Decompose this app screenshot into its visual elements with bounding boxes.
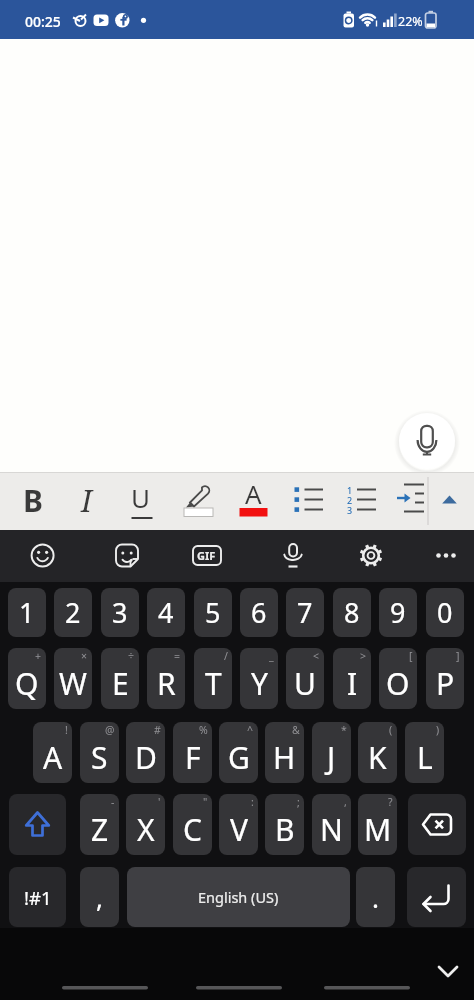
button[interactable]: 9 <box>379 588 417 637</box>
button[interactable]: 0 <box>426 588 464 637</box>
button[interactable] <box>185 534 229 578</box>
button[interactable]: O <box>379 648 417 709</box>
button[interactable]: 5 <box>194 588 232 637</box>
button[interactable]: C <box>173 794 212 855</box>
staticText: ( <box>389 723 393 737</box>
button[interactable]: 8 <box>333 588 371 637</box>
button[interactable]: R <box>147 648 185 709</box>
staticText: , <box>96 880 103 915</box>
button[interactable]: A <box>33 722 72 783</box>
staticText: 5 <box>205 594 221 631</box>
staticText: = <box>174 649 181 663</box>
staticText: A <box>245 476 262 511</box>
staticText: 22% <box>398 13 423 30</box>
staticText: 4 <box>158 594 174 631</box>
button[interactable] <box>434 478 472 524</box>
button[interactable]: K <box>358 722 397 783</box>
button[interactable]: G <box>219 722 258 783</box>
button[interactable] <box>424 534 468 578</box>
button[interactable] <box>324 974 410 1000</box>
button[interactable]: U <box>115 470 167 524</box>
button[interactable]: H <box>265 722 304 783</box>
button[interactable]: S <box>80 722 119 783</box>
button[interactable] <box>408 794 466 855</box>
staticText: [ <box>409 649 413 663</box>
staticText: V <box>230 809 248 850</box>
staticText: 3 <box>347 504 353 516</box>
staticText: ! <box>65 723 68 737</box>
button[interactable]: I <box>333 648 371 709</box>
staticText: B <box>23 480 43 521</box>
staticText: Z <box>91 809 109 850</box>
button[interactable]: Q <box>8 648 46 709</box>
button[interactable]: B <box>7 473 59 527</box>
button[interactable]: N <box>312 794 351 855</box>
button[interactable]: B <box>265 794 304 855</box>
button[interactable]: F <box>173 722 212 783</box>
button[interactable]: Z <box>80 794 119 855</box>
staticText: O <box>386 663 410 704</box>
button[interactable]: E <box>101 648 139 709</box>
staticText: # <box>154 723 161 737</box>
staticText: G <box>228 737 250 778</box>
button[interactable]: , <box>80 867 119 927</box>
button[interactable] <box>283 472 335 526</box>
staticText: " <box>203 795 208 809</box>
button[interactable] <box>196 974 282 1000</box>
button[interactable] <box>337 472 389 526</box>
button[interactable] <box>172 470 224 524</box>
button[interactable]: U <box>286 648 324 709</box>
staticText: ' <box>158 795 161 809</box>
staticText: + <box>35 649 42 663</box>
staticText: < <box>313 649 320 663</box>
staticText: @ <box>105 723 115 737</box>
staticText: 2 <box>347 494 353 506</box>
button[interactable]: . <box>356 867 395 927</box>
button[interactable]: X <box>126 794 165 855</box>
staticText: × <box>81 649 88 663</box>
staticText: 7 <box>297 594 313 631</box>
staticText: 1 <box>19 594 35 631</box>
button[interactable]: 7 <box>286 588 324 637</box>
button[interactable]: T <box>194 648 232 709</box>
button[interactable] <box>9 794 66 855</box>
button[interactable] <box>407 867 466 927</box>
button[interactable]: M <box>358 794 397 855</box>
button[interactable] <box>349 534 393 578</box>
button[interactable]: Y <box>240 648 278 709</box>
staticText: : <box>251 795 254 809</box>
staticText: H <box>273 737 296 778</box>
button[interactable] <box>388 472 440 526</box>
button[interactable]: I <box>61 473 113 527</box>
staticText: 00:25 <box>25 12 61 31</box>
button[interactable]: 4 <box>147 588 185 637</box>
button[interactable]: V <box>219 794 258 855</box>
button[interactable] <box>432 958 464 986</box>
button[interactable]: 1 <box>8 588 46 637</box>
staticText: ] <box>456 649 460 663</box>
button[interactable]: W <box>54 648 92 709</box>
staticText: Q <box>15 663 39 704</box>
staticText: N <box>320 809 343 850</box>
button[interactable]: 3 <box>101 588 139 637</box>
button[interactable]: !#1 <box>9 867 66 927</box>
button[interactable] <box>105 534 149 578</box>
staticText: % <box>199 723 208 737</box>
button[interactable]: A <box>227 471 279 525</box>
button[interactable]: J <box>312 722 351 783</box>
button[interactable]: P <box>426 648 464 709</box>
staticText: GIF <box>197 548 216 563</box>
button[interactable]: 6 <box>240 588 278 637</box>
button[interactable] <box>399 413 455 469</box>
staticText: P <box>436 663 455 704</box>
staticText: B <box>275 809 295 850</box>
button[interactable]: 2 <box>54 588 92 637</box>
button[interactable] <box>269 534 313 578</box>
button[interactable]: D <box>126 722 165 783</box>
staticText: _ <box>269 649 274 663</box>
button[interactable] <box>62 974 148 1000</box>
button[interactable] <box>21 534 65 578</box>
button[interactable]: L <box>405 722 444 783</box>
staticText: U <box>131 480 151 515</box>
button[interactable]: English (US) <box>127 867 350 927</box>
